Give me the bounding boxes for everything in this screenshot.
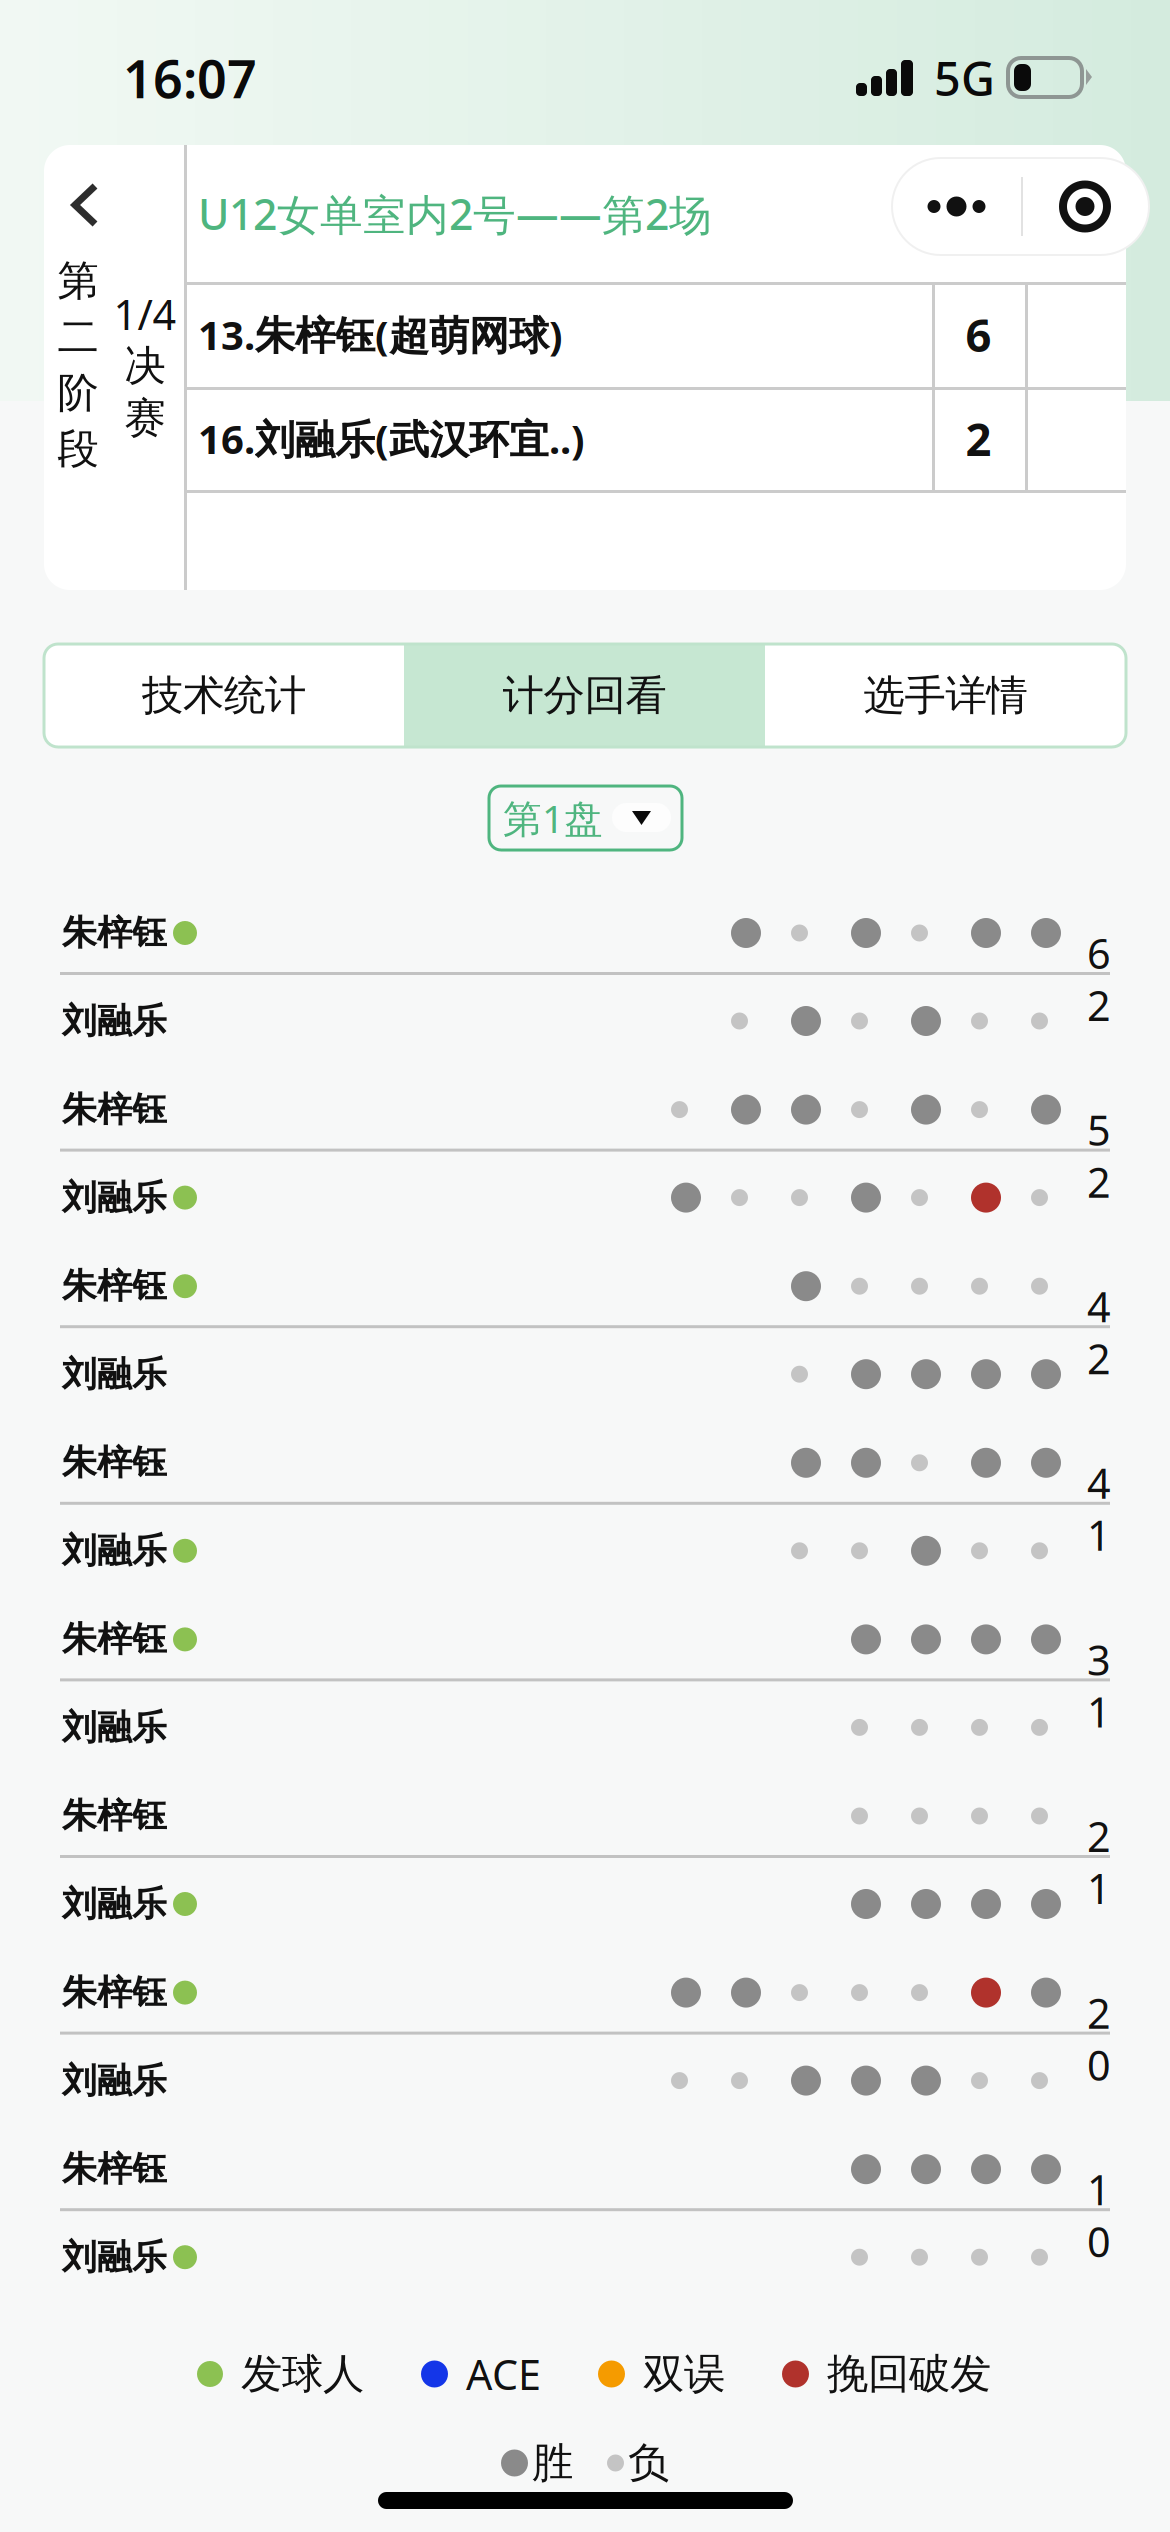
staticText: 5 [1087, 1102, 1111, 1157]
staticText: 刘融乐 [62, 2236, 167, 2278]
staticText: 2 [1087, 978, 1111, 1032]
staticText: 朱梓钰 [62, 1441, 167, 1484]
staticText: 0 [1087, 2037, 1111, 2092]
staticText: 决 [124, 341, 165, 391]
staticText: 2 [965, 408, 991, 469]
staticText: 1/4 [113, 287, 176, 341]
staticText: 刘融乐 [62, 1706, 167, 1749]
staticText: 16.刘融乐(武汉环宜..) [198, 412, 585, 465]
staticText: 赛 [124, 393, 165, 443]
staticText: 负 [628, 2438, 669, 2488]
staticText: 16:07 [123, 43, 257, 113]
staticText: ACE [466, 2347, 541, 2401]
staticText: 胜 [532, 2438, 573, 2488]
staticText: 朱梓钰 [62, 1618, 167, 1661]
staticText: 朱梓钰 [62, 1795, 167, 1837]
staticText: 3 [1087, 1632, 1111, 1687]
staticText: 2 [1087, 1809, 1111, 1863]
staticText: 计分回看 [502, 670, 666, 721]
staticText: 1 [1087, 1861, 1111, 1915]
button[interactable]: 选手详情 [765, 644, 1126, 747]
staticText: 5G [934, 47, 995, 109]
staticText: 朱梓钰 [62, 1971, 167, 2014]
button[interactable]: 技术统计 [44, 644, 404, 747]
staticText: 1 [1087, 1684, 1111, 1739]
staticText: 4 [1087, 1455, 1111, 1510]
staticText: 朱梓钰 [62, 1265, 167, 1307]
button[interactable]: 第1盘 [489, 786, 682, 850]
staticText: 13.朱梓钰(超萌网球) [198, 308, 563, 361]
staticText: 1 [1087, 1507, 1111, 1562]
staticText: 刘融乐 [62, 1529, 167, 1572]
staticText: 刘融乐 [62, 1353, 167, 1395]
staticText: 2 [1087, 1331, 1111, 1386]
staticText: 第 [57, 256, 98, 306]
staticText: 朱梓钰 [62, 912, 167, 954]
staticText: 刘融乐 [62, 1883, 167, 1925]
staticText: 段 [57, 424, 98, 474]
staticText: 2 [1087, 1154, 1111, 1209]
staticText: 4 [1087, 1279, 1111, 1334]
staticText: 2 [1087, 1985, 1111, 2040]
staticText: 朱梓钰 [62, 2148, 167, 2190]
staticText: 挽回破发 [827, 2349, 991, 2399]
staticText: 二 [57, 312, 98, 362]
staticText: 刘融乐 [62, 1176, 167, 1219]
staticText: 技术统计 [142, 670, 306, 721]
staticText: 朱梓钰 [62, 1088, 167, 1131]
staticText: 阶 [57, 368, 98, 418]
staticText: 6 [965, 304, 991, 365]
staticText: 发球人 [241, 2349, 364, 2399]
button[interactable]: 计分回看 [404, 644, 765, 747]
staticText: 第1盘 [503, 792, 603, 844]
staticText: 1 [1087, 2162, 1111, 2217]
staticText: 0 [1087, 2214, 1111, 2269]
staticText: U12女单室内2号——第2场 [198, 185, 712, 242]
staticText: 选手详情 [863, 670, 1027, 721]
button[interactable]: 关闭 [1021, 158, 1149, 255]
button[interactable]: 返回 [30, 150, 140, 260]
staticText: 刘融乐 [62, 1000, 167, 1042]
staticText: 双误 [643, 2349, 725, 2399]
staticText: 6 [1087, 926, 1111, 980]
button[interactable]: 更多 [892, 158, 1021, 255]
staticText: 刘融乐 [62, 2059, 167, 2102]
